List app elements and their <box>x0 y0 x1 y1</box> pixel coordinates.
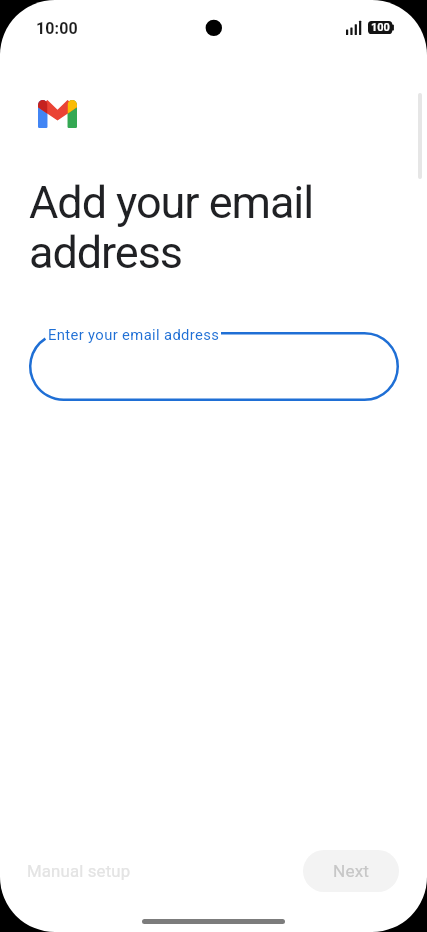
button[interactable]: Next <box>303 850 399 892</box>
staticText: Next <box>333 861 370 881</box>
staticText: 100 <box>371 21 390 34</box>
staticText: Manual setup <box>27 861 131 881</box>
button[interactable]: Manual setup <box>19 850 139 892</box>
staticText: Add your email address <box>29 176 329 279</box>
staticText: Enter your email address <box>48 326 220 343</box>
staticText: 10:00 <box>36 19 78 38</box>
